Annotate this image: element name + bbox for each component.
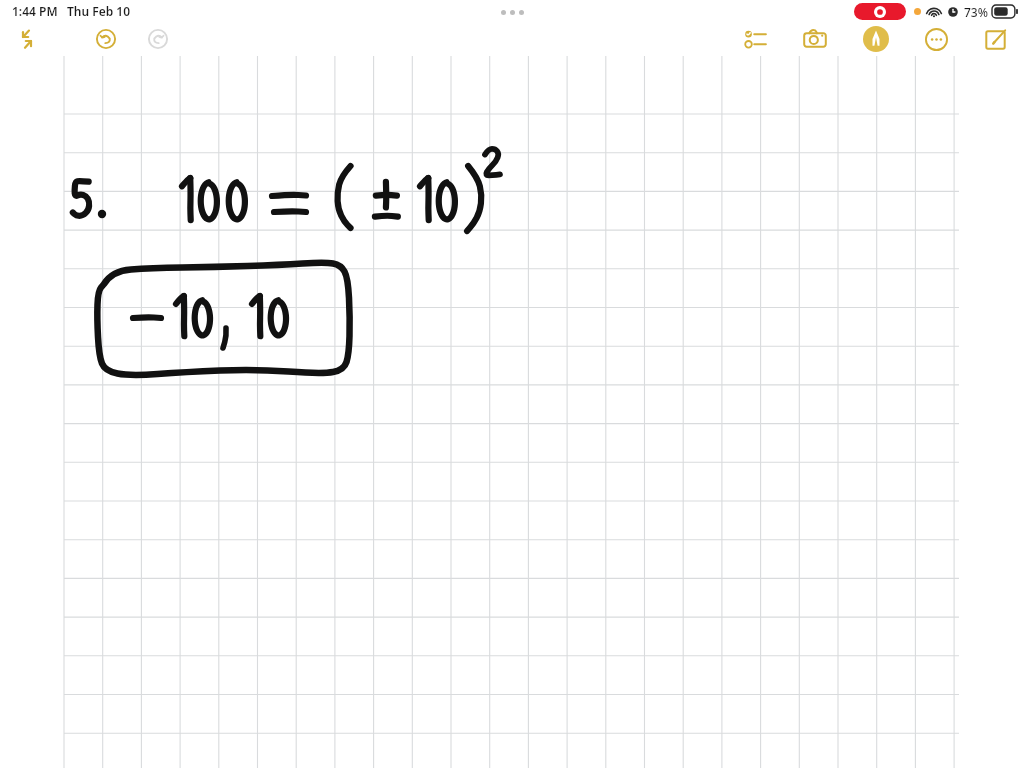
button[interactable]: More options xyxy=(918,22,955,56)
button[interactable]: Camera xyxy=(796,22,834,56)
button[interactable]: Collapse xyxy=(10,22,44,56)
button[interactable]: Undo xyxy=(88,22,124,56)
button[interactable]: Redo xyxy=(140,22,176,56)
staticText: 1:44 PM Thu Feb 10 xyxy=(12,3,131,19)
button[interactable]: Recording xyxy=(854,3,906,20)
button[interactable]: Pen tool xyxy=(856,22,896,56)
button[interactable]: Checklist xyxy=(738,22,774,56)
staticText: 73% xyxy=(964,4,988,20)
button[interactable]: Compose xyxy=(977,22,1014,56)
